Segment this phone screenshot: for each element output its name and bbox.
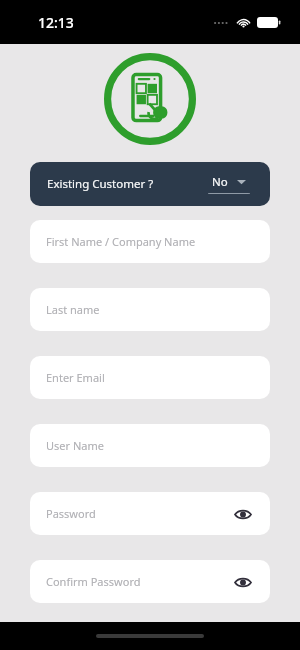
button[interactable]: Existing Customer ? [30, 162, 270, 206]
button[interactable]: Show password [232, 503, 254, 525]
staticText: No [212, 174, 228, 190]
button[interactable]: Password [30, 492, 270, 535]
staticText: Password [46, 506, 96, 521]
button[interactable]: Show password [232, 571, 254, 593]
staticText: First Name / Company Name [46, 234, 196, 249]
staticText: 12:13 [38, 13, 74, 32]
button[interactable]: Enter Email [30, 356, 270, 399]
staticText: Existing Customer ? [47, 176, 154, 192]
staticText: Enter Email [46, 370, 105, 385]
staticText: Confirm Password [46, 574, 141, 589]
staticText: User Name [46, 438, 104, 453]
button[interactable]: Confirm Password [30, 560, 270, 603]
button[interactable]: Last name [30, 288, 270, 331]
button[interactable]: No [206, 174, 252, 194]
button[interactable]: First Name / Company Name [30, 220, 270, 263]
other: Open dropdown [237, 179, 246, 185]
button[interactable]: User Name [30, 424, 270, 467]
staticText: Last name [46, 302, 100, 317]
